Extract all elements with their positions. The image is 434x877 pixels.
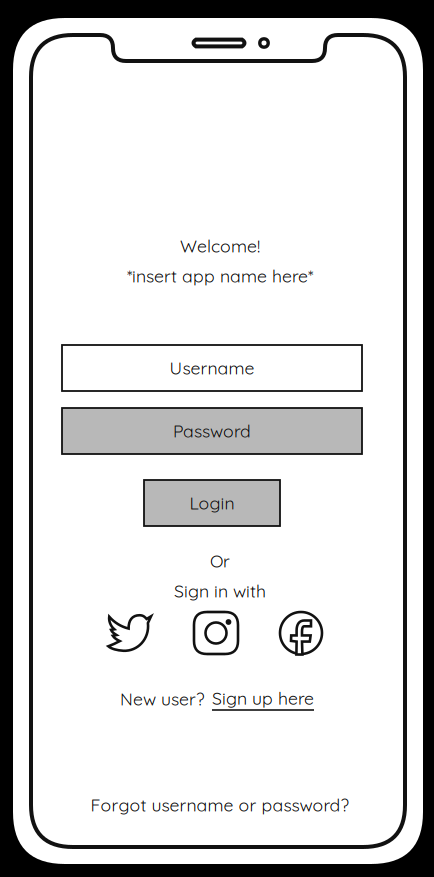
staticText: Password bbox=[173, 420, 251, 442]
staticText: Or bbox=[210, 550, 230, 572]
button[interactable]: Username bbox=[62, 345, 362, 391]
button[interactable]: Sign up here bbox=[212, 687, 314, 711]
staticText: Username bbox=[169, 357, 254, 379]
staticText: Welcome! bbox=[180, 235, 260, 257]
staticText: Login bbox=[189, 492, 234, 514]
button[interactable]: Sign in with Instagram bbox=[191, 610, 241, 656]
staticText: Sign in with bbox=[174, 580, 266, 602]
button[interactable]: Sign in with Facebook bbox=[276, 610, 326, 656]
button[interactable]: Login bbox=[144, 480, 280, 526]
button[interactable]: Forgot username or password? bbox=[90, 794, 349, 816]
button[interactable]: Sign in with Twitter bbox=[104, 610, 154, 656]
staticText: Forgot username or password? bbox=[90, 794, 349, 816]
button[interactable]: Password bbox=[62, 408, 362, 454]
staticText: New user? bbox=[120, 688, 205, 710]
staticText: *insert app name here* bbox=[127, 265, 313, 287]
staticText: Sign up here bbox=[212, 687, 314, 709]
